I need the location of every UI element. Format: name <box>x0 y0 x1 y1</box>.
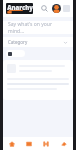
button[interactable]: Search <box>39 3 50 14</box>
button[interactable]: Filter <box>6 50 25 57</box>
button[interactable]: Chat <box>37 137 55 150</box>
staticText: Say what's on your mind... <box>8 21 68 34</box>
button[interactable]: Feed <box>20 137 37 150</box>
button[interactable]: Profile <box>52 4 61 13</box>
button[interactable]: Anarchy home <box>6 3 33 14</box>
button[interactable]: Category <box>3 37 73 47</box>
button[interactable]: Say what's on your mind... <box>3 21 73 34</box>
staticText: Category <box>8 39 28 45</box>
staticText: Anarchy <box>7 4 33 12</box>
button[interactable]: Notifications <box>55 137 73 150</box>
button[interactable] <box>3 60 73 100</box>
button[interactable]: Home <box>3 137 20 150</box>
